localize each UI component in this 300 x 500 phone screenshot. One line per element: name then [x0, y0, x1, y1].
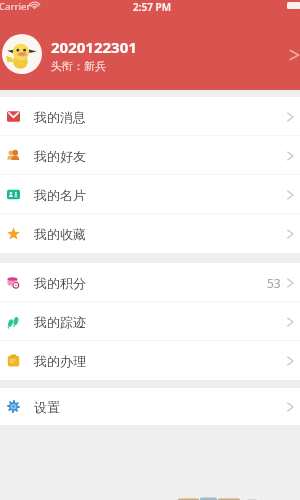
button[interactable]: 我的积分	[0, 263, 300, 302]
staticText: 2:57 PM	[133, 0, 171, 14]
button[interactable]: 我的名片	[0, 175, 300, 214]
other: Open profile	[289, 48, 300, 62]
staticText: 设置	[34, 399, 60, 415]
button[interactable]: 我的办理	[0, 341, 300, 380]
button[interactable]: 我的好友	[0, 136, 300, 175]
staticText: 我的收藏	[34, 226, 86, 242]
staticText: Carrier	[0, 0, 31, 13]
button[interactable]: 我的踪迹	[0, 302, 300, 341]
staticText: 我的踪迹	[34, 314, 86, 330]
staticText: 我的名片	[34, 187, 86, 203]
staticText: 53	[267, 275, 281, 291]
button[interactable]: 我的消息	[0, 97, 300, 136]
staticText: 我的积分	[34, 275, 86, 291]
button[interactable]: 设置	[0, 388, 300, 425]
staticText: 我的消息	[34, 109, 86, 125]
staticText: 我的办理	[34, 353, 86, 369]
staticText: 头衔：新兵	[51, 59, 106, 73]
staticText: 我的好友	[34, 148, 86, 164]
staticText: 2020122301	[51, 37, 137, 57]
button[interactable]: 我的收藏	[0, 214, 300, 253]
button[interactable]: 2020122301	[0, 20, 300, 90]
